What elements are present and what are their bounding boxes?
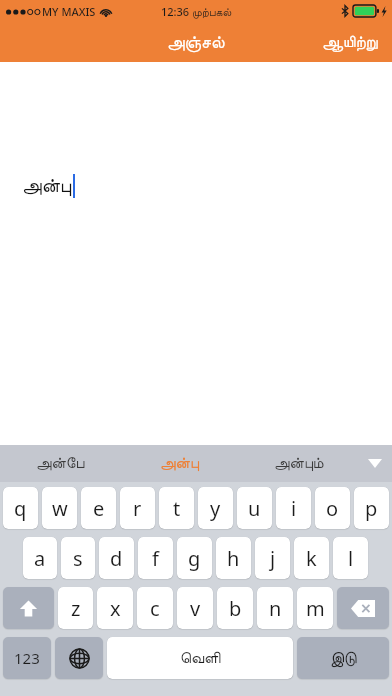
button[interactable]: 123 <box>3 637 51 679</box>
staticText: s <box>73 545 83 572</box>
staticText: அன்பு <box>160 456 199 471</box>
button[interactable]: l <box>333 537 368 579</box>
staticText: l <box>348 545 354 572</box>
button[interactable]: h <box>216 537 251 579</box>
staticText: y <box>210 495 221 522</box>
button[interactable]: g <box>177 537 212 579</box>
staticText: e <box>93 495 105 522</box>
button[interactable]: இடு <box>297 637 389 679</box>
button[interactable]: o <box>315 487 350 529</box>
staticText: வெளி <box>180 650 221 666</box>
staticText: z <box>71 595 81 622</box>
button[interactable]: அன்பும் <box>239 445 358 482</box>
button[interactable]: e <box>81 487 116 529</box>
staticText: v <box>190 595 201 622</box>
button[interactable]: t <box>159 487 194 529</box>
button[interactable]: Shift <box>3 587 54 629</box>
staticText: m <box>306 595 325 622</box>
button[interactable]: k <box>294 537 329 579</box>
staticText: k <box>306 545 317 572</box>
staticText: MY MAXIS <box>42 4 96 19</box>
staticText: 12:36 முற்பகல் <box>161 4 232 19</box>
button[interactable]: j <box>255 537 290 579</box>
button[interactable]: q <box>3 487 38 529</box>
staticText: அஞ்சல் <box>167 34 225 51</box>
staticText: n <box>269 595 282 622</box>
button[interactable]: f <box>138 537 173 579</box>
button[interactable]: a <box>23 537 57 579</box>
staticText: d <box>110 545 123 572</box>
button[interactable]: v <box>177 587 213 629</box>
staticText: t <box>173 495 181 522</box>
button[interactable]: u <box>237 487 272 529</box>
staticText: i <box>291 495 297 522</box>
staticText: u <box>248 495 261 522</box>
button[interactable]: z <box>58 587 93 629</box>
staticText: x <box>110 595 121 622</box>
button[interactable]: அன்பே <box>0 445 120 482</box>
staticText: p <box>365 495 378 522</box>
staticText: g <box>188 545 201 572</box>
button[interactable]: More suggestions <box>358 445 392 482</box>
staticText: ஆயிற்று <box>322 34 378 50</box>
staticText: r <box>133 495 142 522</box>
button[interactable]: வெளி <box>107 637 293 679</box>
staticText: 123 <box>14 648 40 668</box>
staticText: c <box>150 595 160 622</box>
button[interactable]: r <box>120 487 155 529</box>
button[interactable]: b <box>217 587 253 629</box>
button[interactable]: d <box>99 537 134 579</box>
staticText: அன்பும் <box>274 456 324 471</box>
staticText: w <box>52 495 68 522</box>
staticText: q <box>14 495 27 522</box>
staticText: o <box>326 495 339 522</box>
button[interactable]: அன்பு <box>120 445 239 482</box>
button[interactable]: p <box>354 487 389 529</box>
button[interactable]: n <box>257 587 293 629</box>
staticText: a <box>34 545 46 572</box>
button[interactable]: c <box>137 587 173 629</box>
button[interactable]: x <box>97 587 133 629</box>
button[interactable]: Backspace <box>337 587 389 629</box>
staticText: இடு <box>330 650 357 666</box>
button[interactable]: s <box>61 537 95 579</box>
button[interactable]: w <box>42 487 77 529</box>
staticText: j <box>270 545 276 572</box>
staticText: h <box>227 545 240 572</box>
staticText: அன்பு <box>22 177 72 196</box>
button[interactable]: ஆயிற்று <box>308 26 392 58</box>
staticText: அன்பே <box>36 456 85 471</box>
button[interactable]: m <box>297 587 333 629</box>
button[interactable]: i <box>276 487 311 529</box>
staticText: f <box>152 545 159 572</box>
button[interactable]: Change keyboard language <box>55 637 103 679</box>
button[interactable]: y <box>198 487 233 529</box>
staticText: b <box>229 595 242 622</box>
